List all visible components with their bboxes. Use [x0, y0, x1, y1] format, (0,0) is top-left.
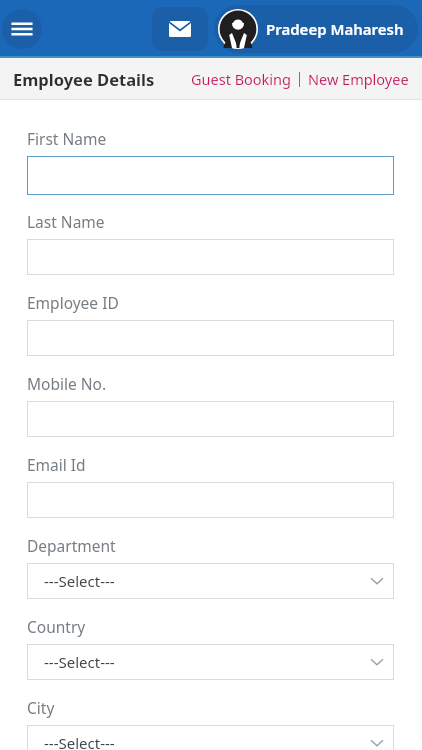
- staticText: Employee ID: [27, 292, 119, 313]
- staticText: ---Select---: [44, 652, 115, 672]
- staticText: Pradeep Maharesh: [266, 19, 404, 39]
- staticText: Department: [27, 535, 116, 556]
- button[interactable]: Menu: [2, 9, 42, 49]
- button[interactable]: [27, 482, 394, 518]
- staticText: Country: [27, 616, 86, 637]
- button[interactable]: ---Select---: [27, 725, 394, 750]
- button[interactable]: Pradeep Maharesh: [214, 5, 418, 53]
- button[interactable]: ---Select---: [27, 563, 394, 599]
- button[interactable]: [27, 320, 394, 356]
- button[interactable]: Guest Booking: [188, 65, 294, 93]
- staticText: Guest Booking: [191, 69, 291, 89]
- staticText: First Name: [27, 128, 107, 149]
- button[interactable]: Messages: [152, 7, 208, 51]
- button[interactable]: [27, 401, 394, 437]
- button[interactable]: ---Select---: [27, 644, 394, 680]
- staticText: City: [27, 697, 55, 718]
- staticText: Employee Details: [13, 68, 155, 90]
- staticText: ---Select---: [44, 733, 115, 750]
- staticText: Last Name: [27, 211, 105, 232]
- button[interactable]: [27, 239, 394, 275]
- button[interactable]: New Employee: [305, 65, 412, 93]
- button[interactable]: [27, 156, 394, 195]
- staticText: Mobile No.: [27, 373, 107, 394]
- staticText: New Employee: [308, 69, 409, 89]
- staticText: ---Select---: [44, 571, 115, 591]
- staticText: Email Id: [27, 454, 86, 475]
